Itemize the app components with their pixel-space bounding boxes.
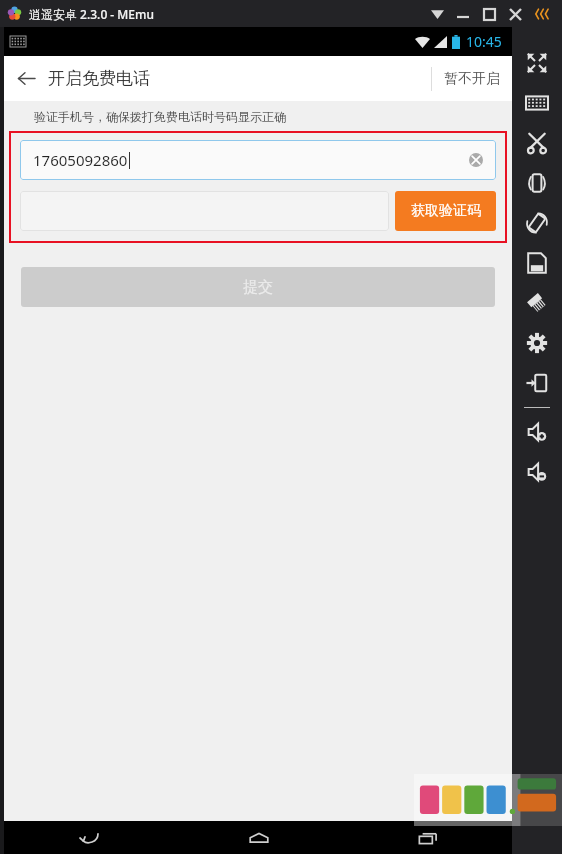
button[interactable]: Share to device (517, 363, 557, 403)
button[interactable]: Volume up (517, 412, 557, 452)
button[interactable] (20, 191, 389, 231)
button[interactable]: 暂不开启 (432, 56, 512, 101)
button[interactable]: Fullscreen (517, 43, 557, 83)
button[interactable]: Minimize (450, 1, 476, 27)
button[interactable]: Home (174, 821, 343, 854)
staticText: 17605092860 (33, 150, 128, 170)
staticText: 10:45 (466, 32, 502, 51)
button[interactable]: Volume down (517, 452, 557, 492)
button[interactable]: 17605092860 (20, 140, 496, 180)
button[interactable]: Back (4, 821, 174, 854)
button[interactable]: 获取验证码 (395, 191, 496, 231)
staticText: 获取验证码 (411, 202, 481, 220)
staticText: 验证手机号，确保拨打免费电话时号码显示正确 (34, 109, 286, 124)
staticText: 提交 (243, 278, 273, 297)
button[interactable]: More (424, 1, 450, 27)
button[interactable]: Recents (343, 821, 512, 854)
button[interactable]: Collapse sidebar (528, 0, 558, 27)
button[interactable]: Rotate (517, 203, 557, 243)
button[interactable]: Install APK (517, 243, 557, 283)
button[interactable]: Keyboard (517, 83, 557, 123)
staticText: 开启免费电话 (48, 68, 150, 89)
button[interactable]: Clear (464, 148, 488, 172)
staticText: 暂不开启 (444, 70, 500, 88)
button[interactable]: Screenshot (517, 123, 557, 163)
staticText: 逍遥安卓 2.3.0 - MEmu (29, 6, 154, 22)
button[interactable]: Maximize (476, 1, 502, 27)
button[interactable]: Back (4, 56, 48, 101)
button[interactable]: Clean (517, 283, 557, 323)
button[interactable]: Close (502, 1, 528, 27)
button[interactable]: Settings (517, 323, 557, 363)
button[interactable]: Shake (517, 163, 557, 203)
